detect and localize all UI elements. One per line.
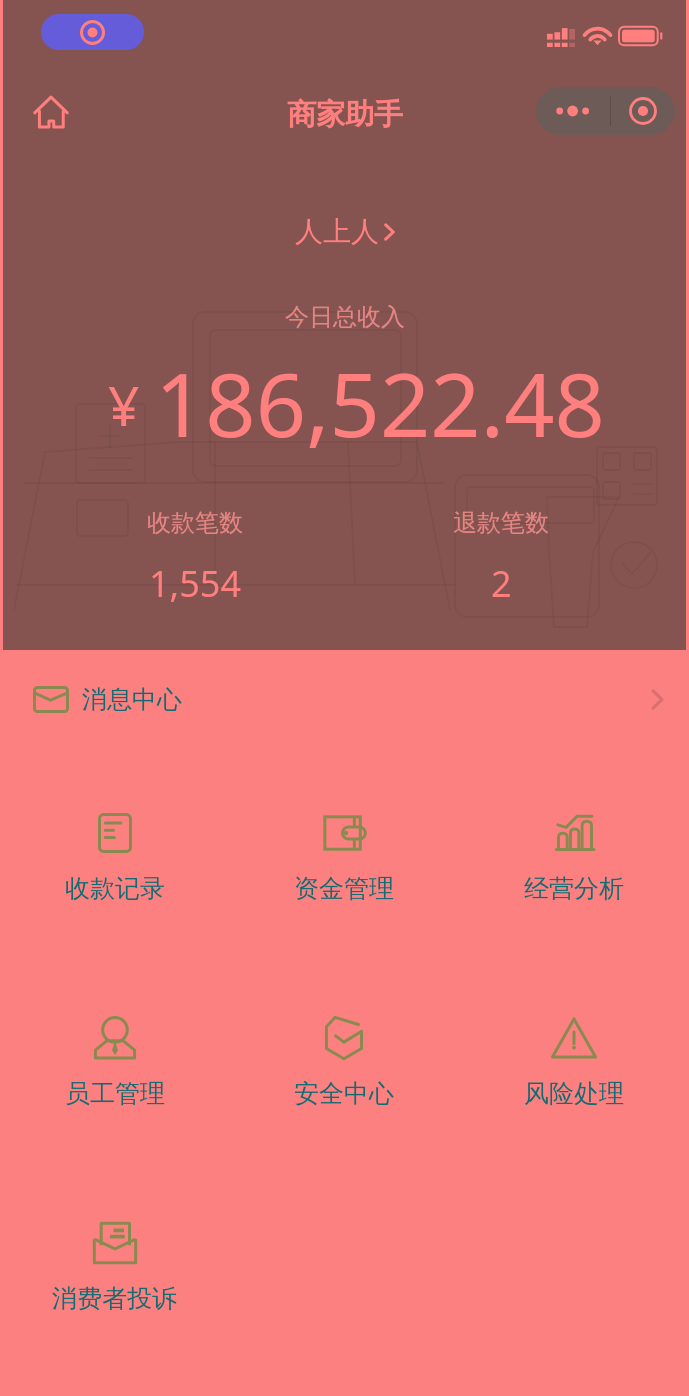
staticText: 人上人 — [295, 214, 379, 249]
staticText: 员工管理 — [65, 1078, 165, 1109]
staticText: 今日总收入 — [285, 302, 405, 332]
button[interactable]: 人上人 — [295, 214, 395, 249]
staticText: 1,554 — [149, 559, 242, 608]
button[interactable]: 风险处理 — [459, 1016, 689, 1109]
staticText: 收款记录 — [65, 873, 165, 904]
staticText: 消费者投诉 — [52, 1283, 177, 1314]
staticText: 资金管理 — [294, 873, 394, 904]
button[interactable]: 经营分析 — [459, 811, 689, 904]
button[interactable]: 资金管理 — [229, 811, 459, 904]
staticText: 186,522.48 — [155, 343, 605, 463]
staticText: 消息中心 — [82, 684, 182, 715]
staticText: 退款笔数 — [453, 508, 549, 538]
staticText: 2 — [491, 559, 512, 608]
staticText: 收款笔数 — [147, 508, 243, 538]
button[interactable]: 员工管理 — [0, 1016, 229, 1109]
staticText: 商家助手 — [287, 96, 403, 133]
staticText: 经营分析 — [524, 873, 624, 904]
button[interactable]: 安全中心 — [229, 1016, 459, 1109]
staticText: 安全中心 — [294, 1078, 394, 1109]
staticText: ¥ — [108, 367, 140, 442]
button[interactable]: More options — [536, 87, 675, 135]
button[interactable]: 消息中心 — [0, 670, 689, 728]
button[interactable]: 收款记录 — [0, 811, 229, 904]
button[interactable]: Home — [26, 86, 78, 138]
staticText: 风险处理 — [524, 1078, 624, 1109]
button[interactable]: 消费者投诉 — [0, 1221, 229, 1314]
